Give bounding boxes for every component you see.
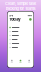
staticText: Clean, simple task bbox=[5, 1, 36, 6]
button[interactable]: Home bbox=[7, 58, 16, 64]
button[interactable] bbox=[9, 37, 32, 41]
button[interactable] bbox=[9, 33, 32, 37]
button[interactable] bbox=[9, 29, 32, 33]
staticText: 9:41 bbox=[9, 14, 13, 17]
button[interactable]: Settings bbox=[25, 58, 33, 64]
button[interactable]: Profile bbox=[29, 18, 32, 21]
staticText: Today bbox=[9, 17, 20, 22]
button[interactable]: Tasks bbox=[16, 58, 25, 64]
button[interactable] bbox=[9, 45, 32, 49]
button[interactable] bbox=[9, 25, 32, 29]
button[interactable] bbox=[9, 41, 32, 45]
staticText: tracking for teams bbox=[5, 6, 35, 11]
